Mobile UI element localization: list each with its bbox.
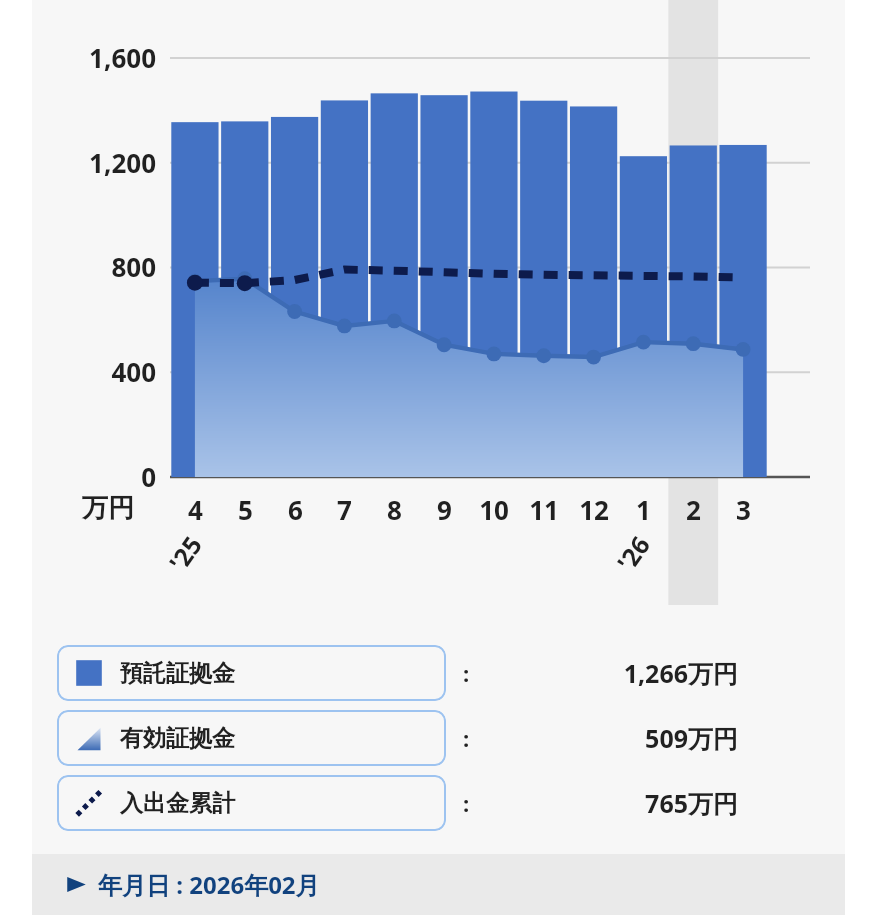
staticText: '25 <box>161 528 209 577</box>
staticText: 3 <box>736 492 751 527</box>
staticText: 2 <box>686 492 701 527</box>
staticText: 預託証拠金 <box>120 659 235 688</box>
staticText: 1 <box>636 492 651 527</box>
staticText: 765万円 <box>645 786 738 820</box>
staticText: 12 <box>579 492 609 527</box>
staticText: '26 <box>609 528 657 577</box>
staticText: 1,600 <box>89 40 156 75</box>
button[interactable]: 入出金累計 <box>57 775 446 831</box>
staticText: 6 <box>288 492 303 527</box>
staticText: 有効証拠金 <box>120 724 235 753</box>
staticText: 7 <box>337 492 352 527</box>
staticText: 年月日 : 2026年02月 <box>98 868 320 901</box>
staticText: : <box>463 723 470 753</box>
staticText: 0 <box>141 459 156 494</box>
staticText: 10 <box>479 492 509 527</box>
button[interactable]: 年月日 : 2026年02月 <box>32 854 845 915</box>
staticText: 入出金累計 <box>120 789 235 818</box>
staticText: : <box>463 788 470 818</box>
staticText: 9 <box>437 492 452 527</box>
staticText: 400 <box>111 354 156 389</box>
button[interactable]: 有効証拠金 <box>57 710 446 766</box>
staticText: 5 <box>238 492 253 527</box>
staticText: 1,200 <box>89 145 156 180</box>
staticText: 1,266万円 <box>623 656 738 690</box>
button[interactable]: 預託証拠金 <box>57 645 446 701</box>
staticText: 8 <box>387 492 402 527</box>
staticText: : <box>463 658 470 688</box>
staticText: 800 <box>111 249 156 284</box>
staticText: 万円 <box>82 492 134 525</box>
staticText: 4 <box>188 492 203 527</box>
staticText: 11 <box>529 492 559 527</box>
staticText: 509万円 <box>645 721 738 755</box>
